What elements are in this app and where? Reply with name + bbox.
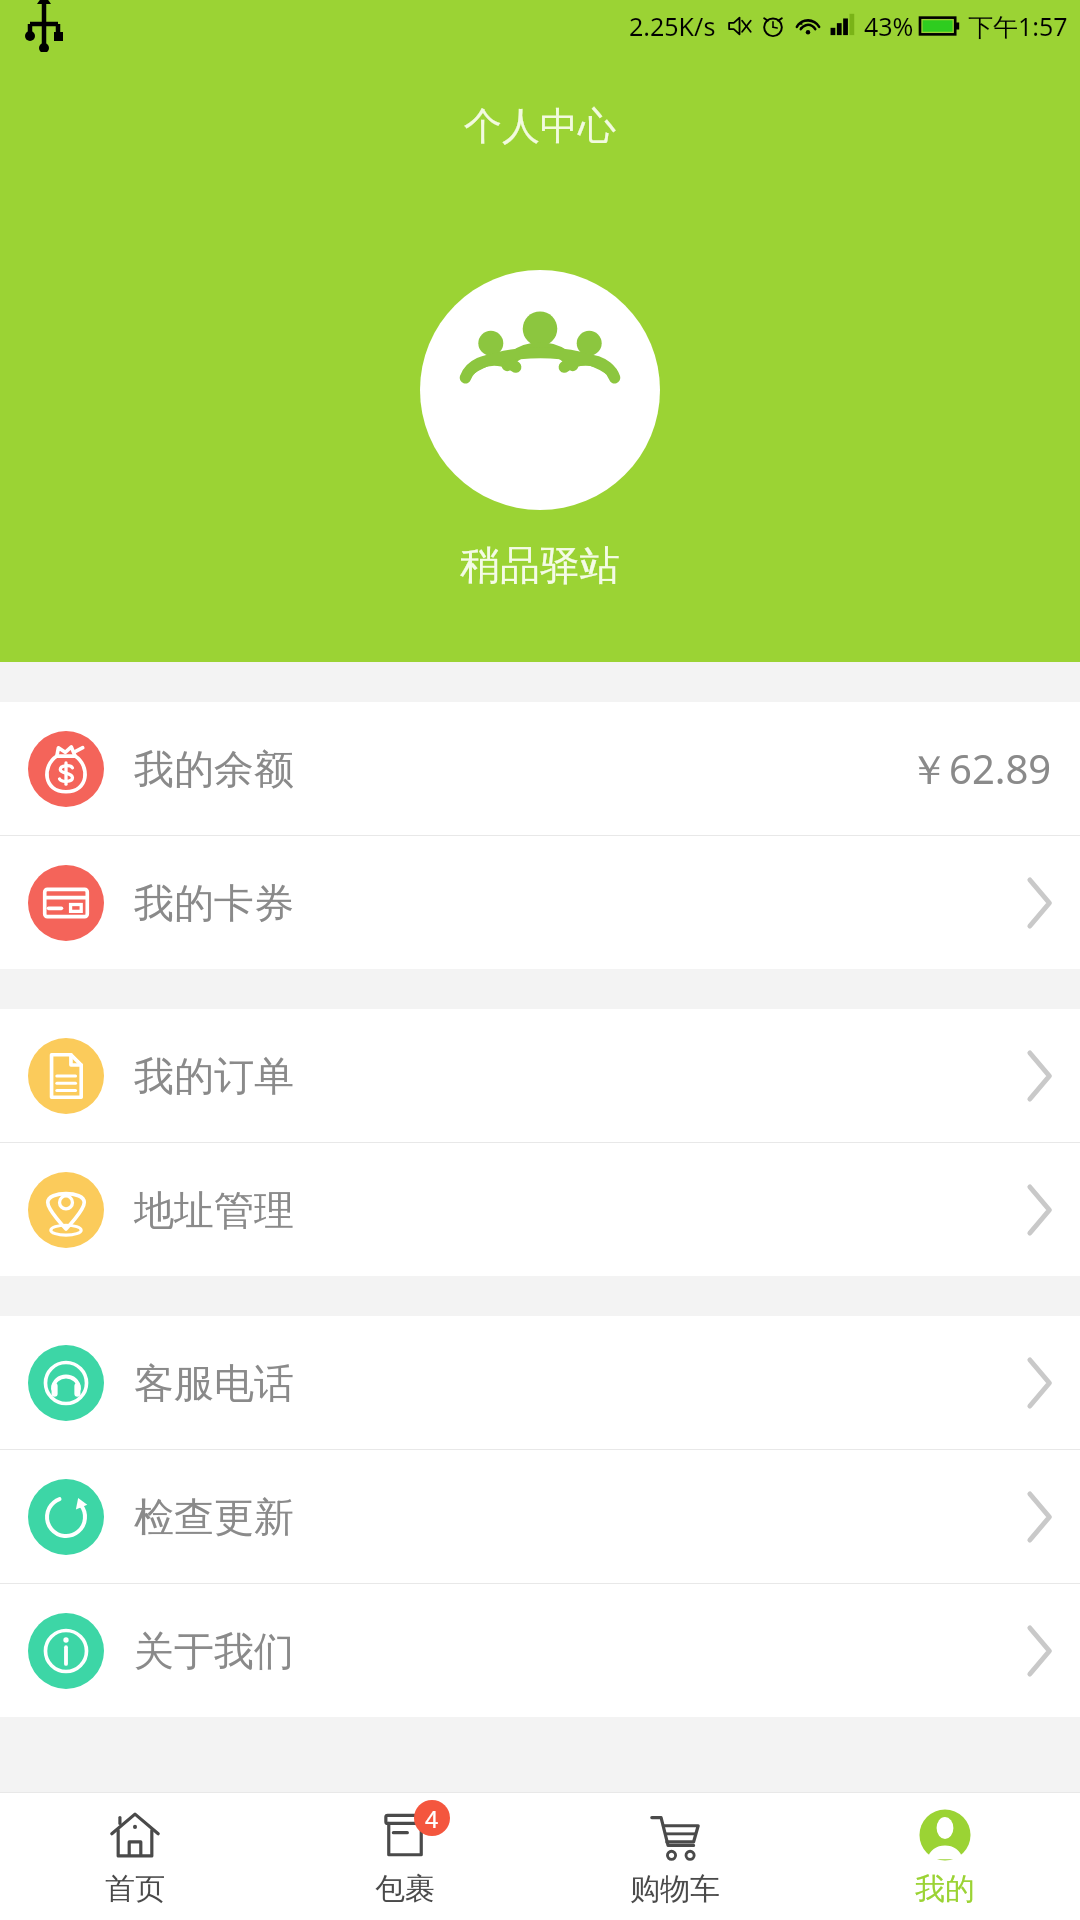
- button[interactable]: 购物车: [540, 1792, 810, 1920]
- staticText: 客服电话: [134, 1358, 294, 1408]
- staticText: 首页: [105, 1870, 165, 1908]
- button[interactable]: 我的订单: [0, 1009, 1080, 1142]
- staticText: 4: [425, 1803, 439, 1834]
- button[interactable]: 我的余额: [0, 702, 1080, 835]
- staticText: 我的余额: [134, 744, 294, 794]
- staticText: 购物车: [630, 1870, 720, 1908]
- button[interactable]: 我的卡券: [0, 836, 1080, 969]
- staticText: 我的卡券: [134, 878, 294, 928]
- button[interactable]: 4: [270, 1792, 540, 1920]
- staticText: 稍品驿站: [460, 540, 620, 590]
- staticText: 包裹: [375, 1870, 435, 1908]
- staticText: 2.25K/s: [629, 9, 716, 43]
- staticText: 下午1:57: [968, 9, 1068, 43]
- button[interactable]: 地址管理: [0, 1143, 1080, 1276]
- staticText: 地址管理: [134, 1185, 294, 1235]
- staticText: 个人中心: [464, 102, 616, 150]
- button[interactable]: 关于我们: [0, 1584, 1080, 1717]
- staticText: 我的订单: [134, 1051, 294, 1101]
- button[interactable]: 客服电话: [0, 1316, 1080, 1449]
- staticText: 检查更新: [134, 1492, 294, 1542]
- staticText: 关于我们: [134, 1626, 294, 1676]
- staticText: ￥62.89: [909, 741, 1052, 796]
- staticText: 43%: [864, 9, 914, 43]
- button[interactable]: 我的: [810, 1792, 1080, 1920]
- button[interactable]: 检查更新: [0, 1450, 1080, 1583]
- button[interactable]: 首页: [0, 1792, 270, 1920]
- staticText: 我的: [915, 1870, 975, 1908]
